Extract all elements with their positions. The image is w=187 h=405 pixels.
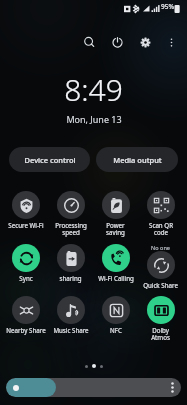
staticText: Dolby Atmos xyxy=(151,326,170,342)
staticText: Quick Share xyxy=(143,281,178,289)
button[interactable]: No one xyxy=(138,243,183,290)
staticText: Scan QR code xyxy=(149,221,173,237)
button[interactable]: Settings xyxy=(135,32,155,52)
staticText: No one xyxy=(151,244,170,251)
button[interactable]: Power saving xyxy=(93,190,138,238)
button[interactable]: Wi-Fi Calling xyxy=(93,243,138,283)
staticText: Processing speed xyxy=(55,221,87,237)
staticText: Music Share xyxy=(53,326,89,334)
staticText: Sync xyxy=(19,274,33,282)
staticText: Wi-Fi Calling xyxy=(98,274,134,282)
staticText: Power saving xyxy=(106,221,125,237)
button[interactable]: Secure Wi-Fi xyxy=(4,190,48,230)
button[interactable]: Nearby Share xyxy=(4,295,48,335)
staticText: 8:49 xyxy=(64,69,123,110)
button[interactable]: Processing speed xyxy=(48,190,93,238)
button[interactable]: Sync xyxy=(4,243,48,283)
staticText: Device control xyxy=(24,155,76,165)
button[interactable]: Dolby Atmos xyxy=(138,295,183,343)
staticText: NFC xyxy=(110,326,122,334)
staticText: Secure Wi-Fi xyxy=(8,221,44,229)
staticText: 95% xyxy=(161,2,174,11)
button[interactable]: Scan QR code xyxy=(138,190,183,238)
button[interactable]: Device control xyxy=(9,147,90,172)
button[interactable]: sharing xyxy=(48,243,93,283)
button[interactable]: Power off xyxy=(107,32,127,52)
button[interactable]: Brightness xyxy=(6,378,181,397)
button[interactable]: NFC xyxy=(93,295,138,335)
staticText: Media output xyxy=(113,155,162,165)
staticText: Mon, June 13 xyxy=(66,113,122,125)
staticText: Nearby Share xyxy=(6,326,46,334)
button[interactable]: More options xyxy=(161,32,181,52)
staticText: sharing xyxy=(59,274,82,282)
button[interactable]: Search xyxy=(79,32,99,52)
button[interactable]: Music Share xyxy=(48,295,93,335)
button[interactable]: Media output xyxy=(96,147,178,172)
